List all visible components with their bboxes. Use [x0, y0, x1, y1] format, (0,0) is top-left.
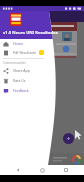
- staticText: Comunicación: [3, 60, 26, 65]
- staticText: Share App: [13, 68, 30, 73]
- button[interactable]: Rate Us: [0, 76, 46, 85]
- button[interactable]: Compose: [63, 133, 74, 144]
- staticText: Pdf Resultado: [13, 50, 36, 55]
- staticText: Home: [13, 41, 23, 46]
- button[interactable]: Recents: [60, 165, 72, 175]
- staticText: Rate Us: [13, 78, 26, 83]
- button[interactable]: Home: [36, 165, 48, 175]
- staticText: v1.0 Neuro UNI Resultados: [3, 30, 58, 36]
- staticText: Feedback: [13, 88, 29, 93]
- button[interactable]: Pdf Resultado: [0, 48, 46, 57]
- button[interactable]: Home: [0, 39, 46, 48]
- button[interactable]: Back: [12, 165, 24, 175]
- button[interactable]: Share App: [0, 66, 46, 75]
- button[interactable]: Feedback: [0, 86, 46, 95]
